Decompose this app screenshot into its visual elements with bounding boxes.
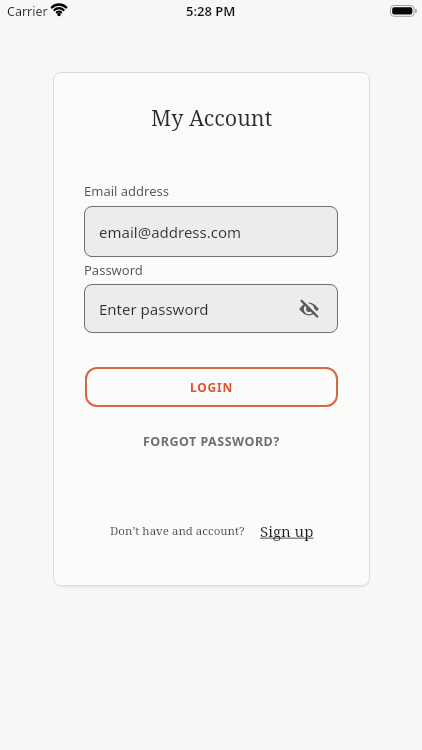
staticText: My Account [151,103,273,132]
staticText: Don’t have and account? [110,523,245,539]
staticText: Enter password [99,299,209,319]
staticText: Email address [84,182,169,200]
staticText: email@address.com [99,222,242,242]
button[interactable]: Enter password [84,284,338,333]
button[interactable]: LOGIN [85,367,338,407]
button[interactable]: FORGOT PASSWORD? [143,433,280,450]
staticText: FORGOT PASSWORD? [143,433,280,450]
staticText: 5:28 PM [186,2,236,20]
staticText: Carrier [7,3,48,20]
staticText: LOGIN [190,379,234,395]
button[interactable]: Sign up [260,521,314,541]
button[interactable]: email@address.com [84,206,338,257]
button[interactable] [298,298,320,320]
staticText: Password [84,261,143,279]
staticText: Sign up [260,521,314,541]
